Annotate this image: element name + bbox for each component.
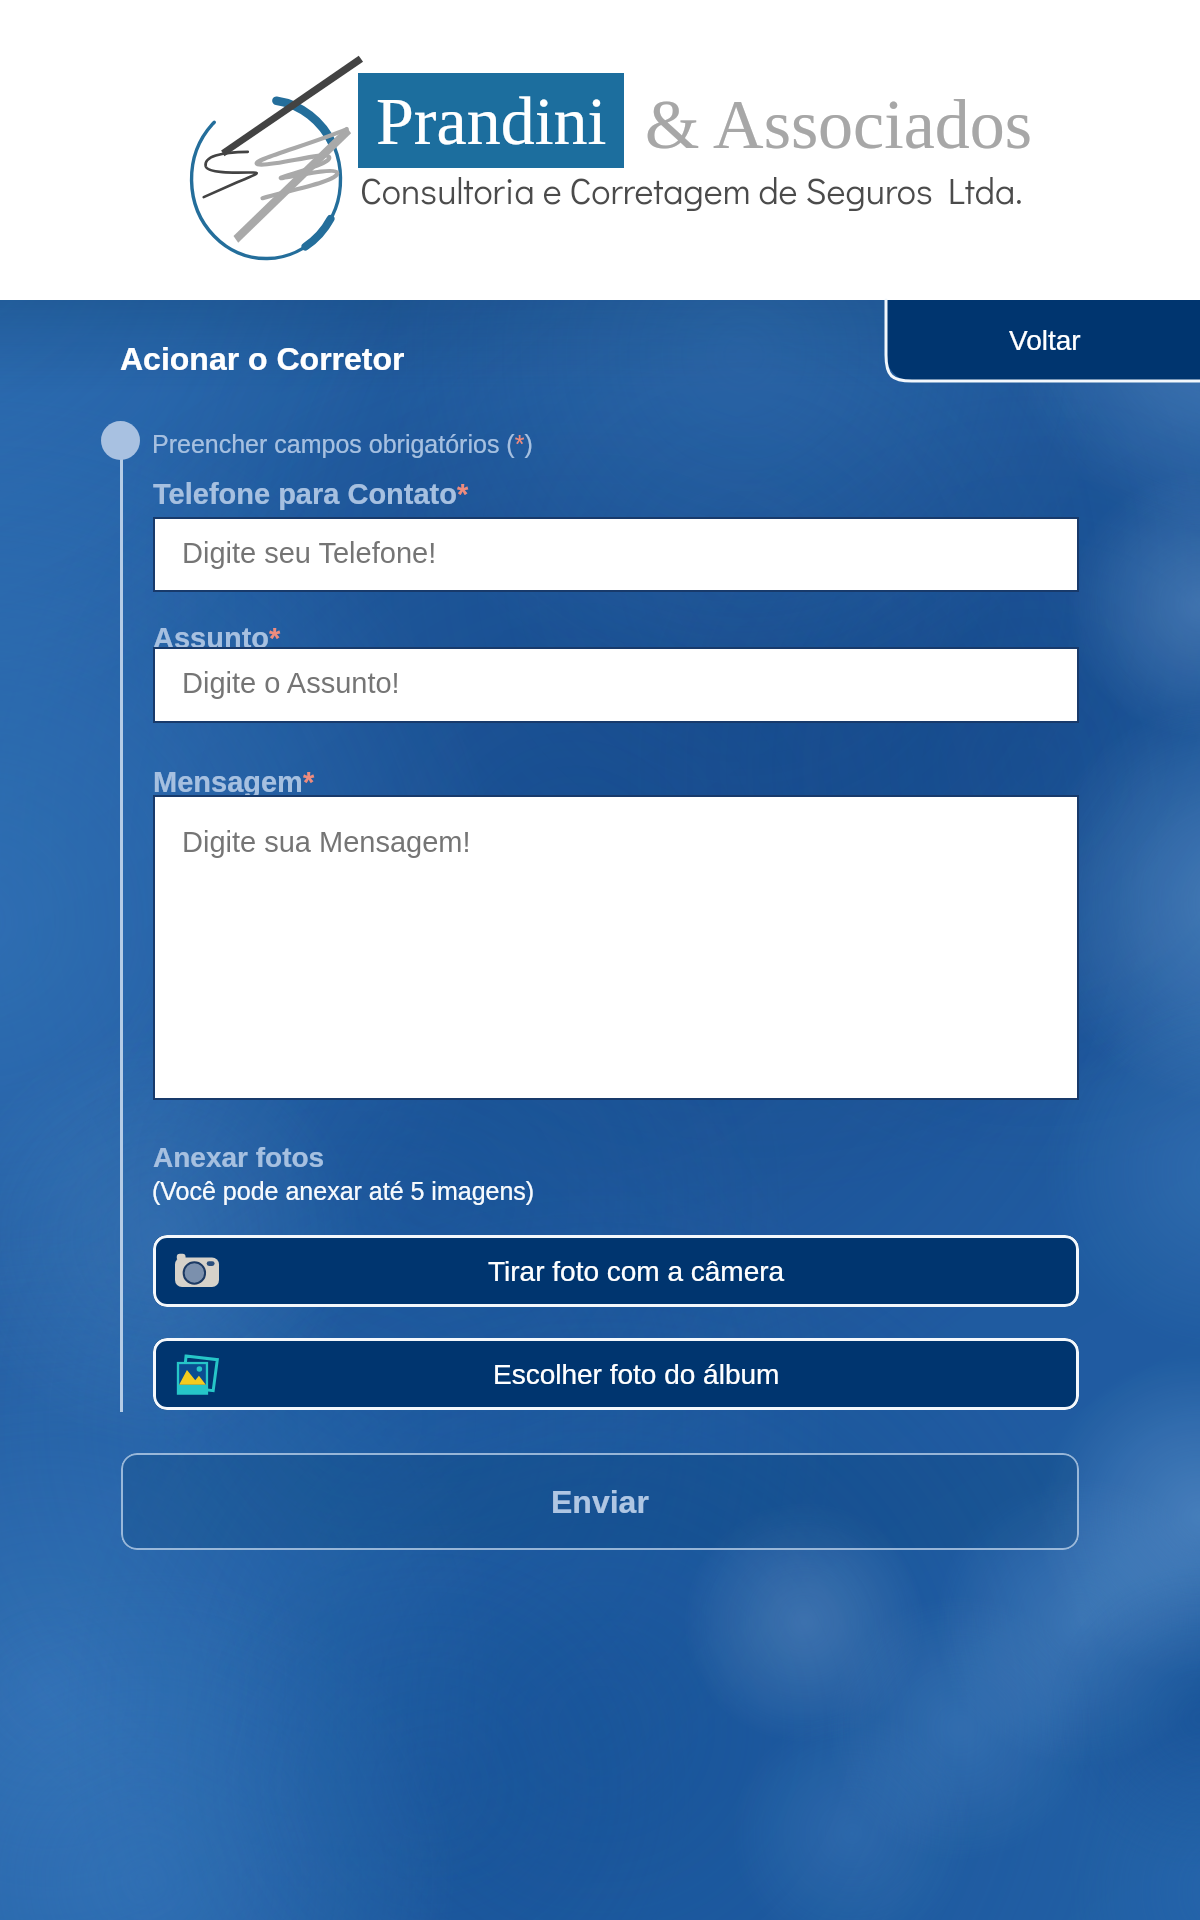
staticText: Assunto* (153, 622, 281, 654)
staticText: Acionar o Corretor (120, 341, 405, 377)
button[interactable]: Escolher foto do álbum (153, 1338, 1079, 1410)
staticText: Consultoria e Corretagem de Seguros Ltda… (360, 166, 1023, 213)
button[interactable]: Digite seu Telefone! (153, 517, 1079, 592)
staticText: & Associados (645, 86, 1032, 164)
other: Tirar foto com a câmera (175, 1253, 219, 1290)
staticText: Voltar (1009, 325, 1081, 356)
button[interactable]: Enviar (121, 1453, 1079, 1550)
button[interactable]: Tirar foto com a câmera (153, 1235, 1079, 1307)
staticText: Telefone para Contato* (153, 478, 469, 510)
staticText: Digite seu Telefone! (182, 537, 437, 569)
staticText: Anexar fotos (153, 1142, 325, 1173)
staticText: (Você pode anexar até 5 imagens) (152, 1177, 535, 1205)
staticText: Digite o Assunto! (182, 667, 400, 699)
staticText: Tirar foto com a câmera (488, 1256, 785, 1287)
staticText: Preencher campos obrigatórios (*) (152, 430, 533, 458)
other: Escolher foto do álbum (175, 1352, 221, 1397)
button[interactable]: Digite sua Mensagem! (153, 795, 1079, 1100)
staticText: Digite sua Mensagem! (182, 826, 471, 858)
staticText: Enviar (551, 1484, 649, 1520)
staticText: Prandini (376, 83, 607, 158)
staticText: Mensagem* (153, 766, 315, 798)
button[interactable]: Digite o Assunto! (153, 647, 1079, 723)
staticText: Escolher foto do álbum (493, 1359, 780, 1390)
button[interactable]: Voltar (886, 300, 1200, 381)
